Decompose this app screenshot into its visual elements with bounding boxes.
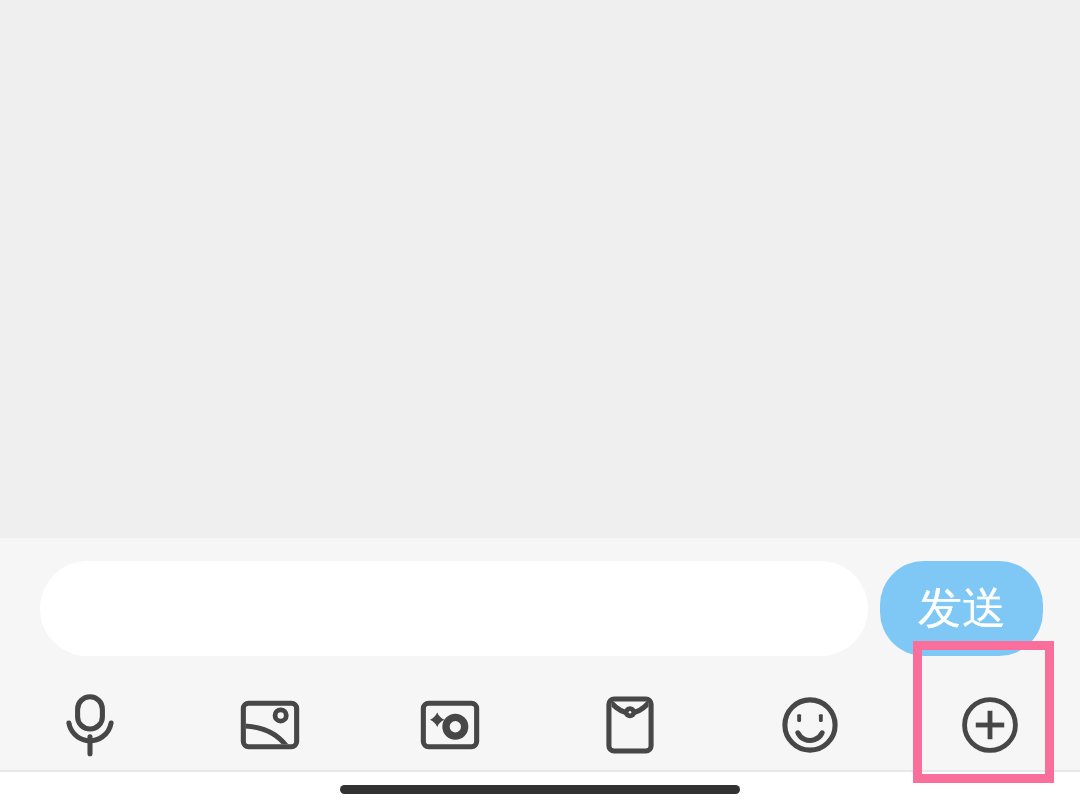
staticText: 发送 bbox=[918, 581, 1006, 636]
button[interactable]: Voice message bbox=[0, 680, 180, 770]
button[interactable]: Camera effects bbox=[360, 680, 540, 770]
button[interactable]: Photo bbox=[180, 680, 360, 770]
button[interactable]: 发送 bbox=[880, 561, 1043, 656]
button[interactable]: Emoji bbox=[720, 680, 900, 770]
button[interactable]: Red packet bbox=[540, 680, 720, 770]
button[interactable]: More options bbox=[900, 680, 1080, 770]
